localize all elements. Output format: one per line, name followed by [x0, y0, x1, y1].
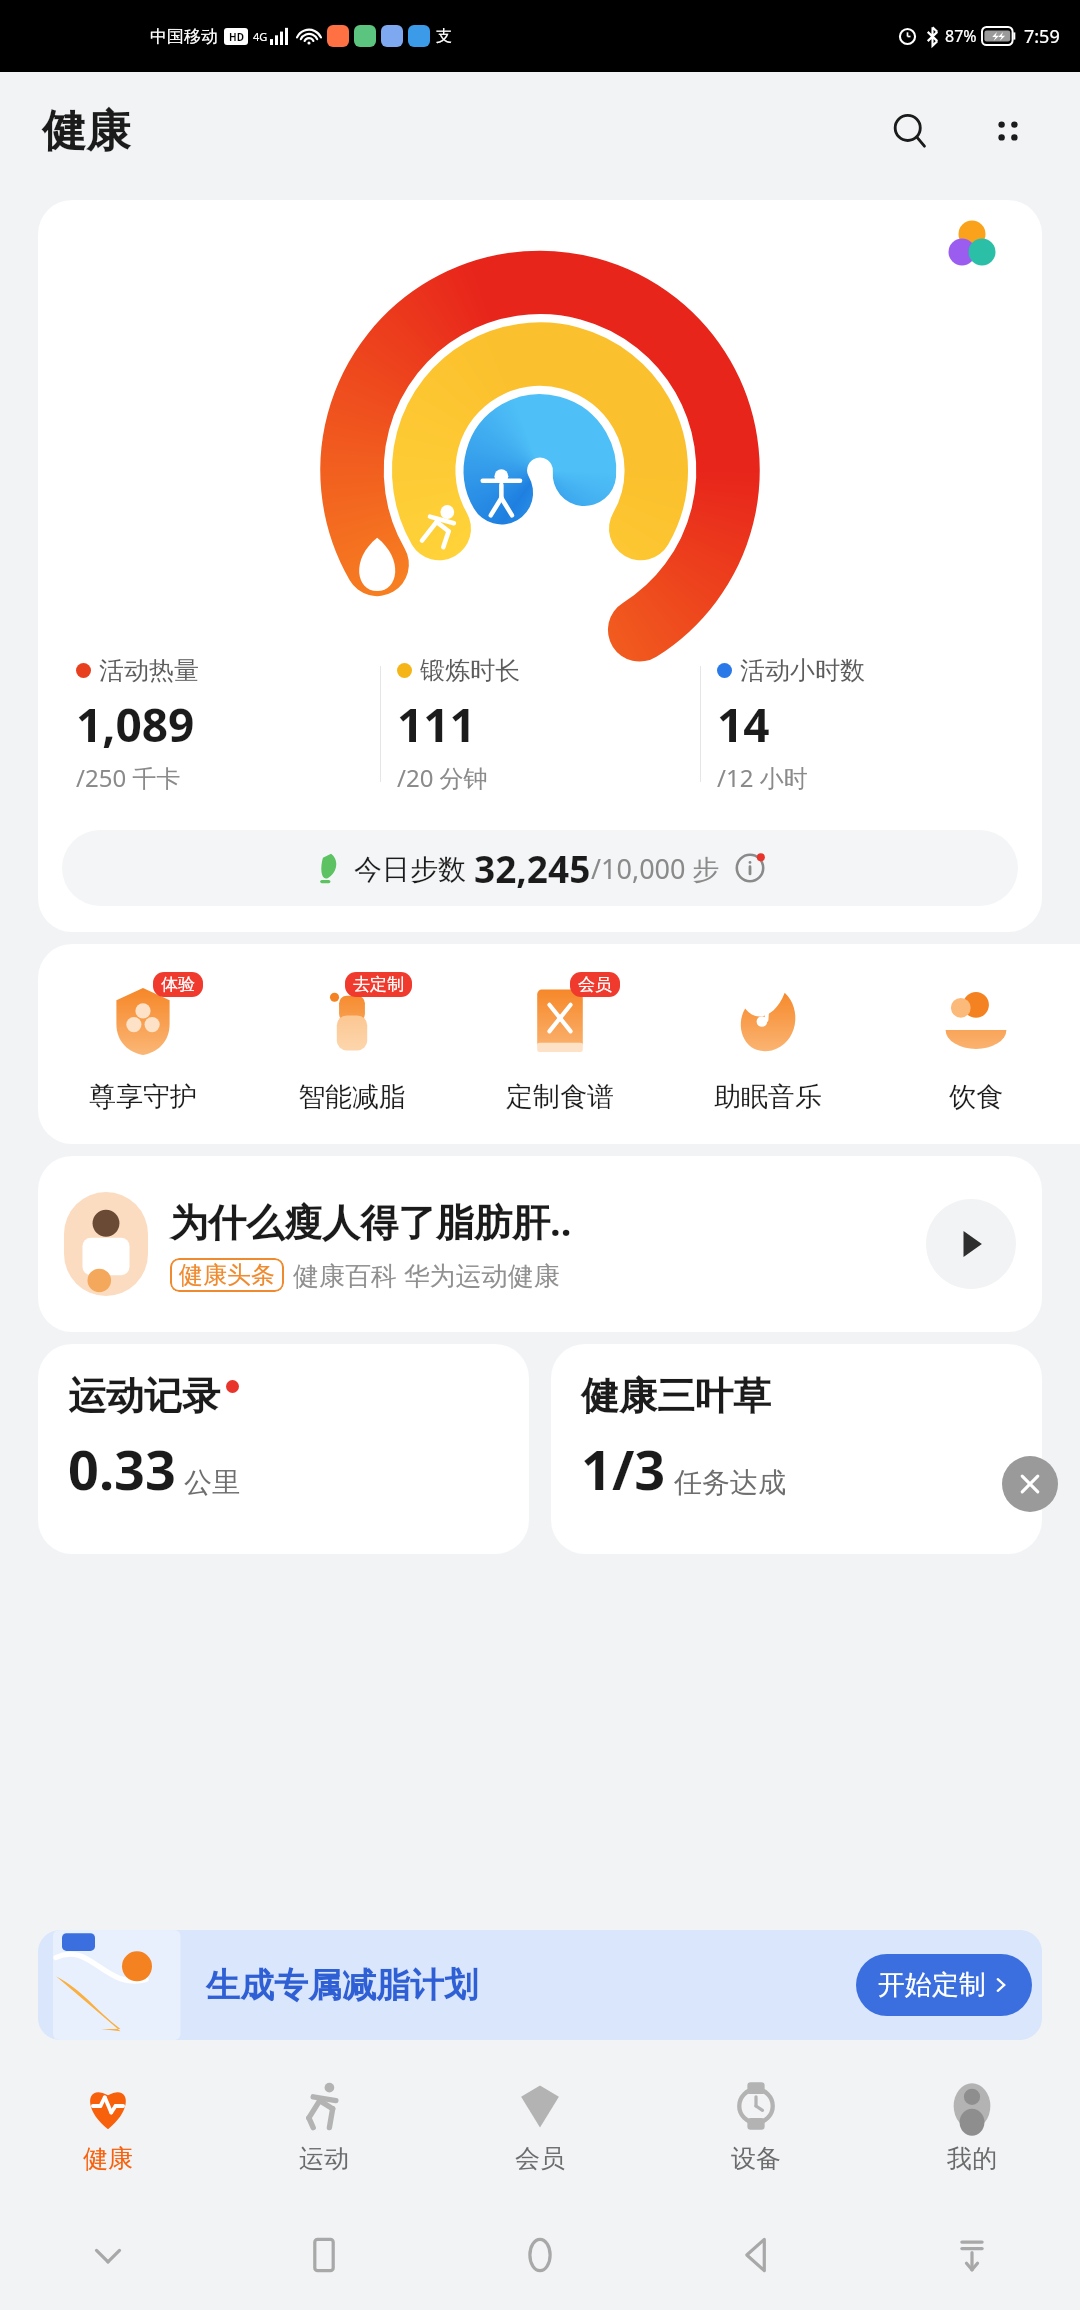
button[interactable]: 生成专属减脂计划 [38, 1930, 1042, 2040]
staticText: 1/3 [581, 1432, 666, 1506]
staticText: /250 千卡 [76, 761, 181, 794]
staticText: 锻炼时长 [420, 655, 520, 686]
staticText: 去定制 [353, 974, 404, 995]
staticText: 体验 [161, 974, 195, 995]
button[interactable]: 会员 [432, 2050, 648, 2200]
staticText: 尊享守护 [89, 1080, 197, 1114]
button[interactable]: 运动记录 [38, 1344, 529, 1554]
button[interactable]: 健康三叶草 [551, 1344, 1042, 1554]
staticText: 4G [253, 29, 268, 44]
button[interactable]: Step info [730, 848, 770, 888]
staticText: /10,000 步 [591, 850, 720, 887]
button[interactable]: 开始定制 [856, 1954, 1032, 2016]
staticText: 设备 [731, 2143, 781, 2174]
staticText: 中国移动 [150, 26, 218, 47]
staticText: 健康 [83, 2143, 133, 2174]
staticText: 助眠音乐 [714, 1080, 822, 1114]
staticText: 我的 [947, 2143, 997, 2174]
staticText: 支 [436, 26, 452, 46]
staticText: 任务达成 [674, 1465, 786, 1500]
staticText: 运动记录 [68, 1372, 220, 1420]
button[interactable]: 饮食 [872, 974, 1080, 1114]
staticText: HD [229, 30, 244, 44]
button[interactable]: 今日步数 [62, 830, 1018, 906]
staticText: 32,245 [474, 843, 591, 893]
staticText: 生成专属减脂计划 [206, 1964, 478, 2007]
button[interactable]: 我的 [864, 2050, 1080, 2200]
button[interactable]: 为什么瘦人得了脂肪肝.. [38, 1156, 1042, 1332]
button[interactable]: 活动热量 [60, 640, 380, 808]
button[interactable]: Search [874, 95, 946, 167]
staticText: 定制食谱 [506, 1080, 614, 1114]
button[interactable]: 去定制 [247, 974, 456, 1114]
staticText: 0.33 [68, 1432, 176, 1506]
staticText: 7:59 [1024, 24, 1060, 49]
staticText: 活动小时数 [740, 655, 865, 686]
staticText: 活动热量 [99, 655, 199, 686]
button[interactable]: System key 4 [864, 2200, 1080, 2310]
staticText: 健康三叶草 [581, 1372, 771, 1420]
button[interactable]: System key 0 [0, 2200, 216, 2310]
button[interactable]: 助眠音乐 [664, 974, 872, 1114]
staticText: 为什么瘦人得了脂肪肝.. [170, 1195, 572, 1247]
staticText: 14 [717, 693, 770, 756]
staticText: 开始定制 [878, 1968, 986, 2002]
button[interactable]: System key 2 [432, 2200, 648, 2310]
button[interactable]: 锻炼时长 [381, 640, 700, 808]
staticText: 公里 [184, 1465, 240, 1500]
button[interactable]: System key 1 [216, 2200, 432, 2310]
staticText: 87% [945, 25, 977, 47]
staticText: 1,089 [76, 693, 195, 756]
staticText: 健康头条 [179, 1260, 275, 1290]
button[interactable]: Health widgets [902, 202, 1042, 284]
staticText: 运动 [299, 2143, 349, 2174]
staticText: /20 分钟 [397, 761, 488, 794]
button[interactable]: Play [926, 1199, 1016, 1289]
button[interactable]: 会员 [456, 974, 664, 1114]
button[interactable]: 活动热量 [38, 200, 1042, 932]
button[interactable]: More options [972, 95, 1044, 167]
button[interactable]: System key 3 [648, 2200, 864, 2310]
staticText: 饮食 [949, 1080, 1003, 1114]
staticText: 健康 [42, 104, 130, 159]
staticText: 健康百科 华为运动健康 [293, 1257, 560, 1293]
button[interactable]: 活动小时数 [701, 640, 1020, 808]
button[interactable]: 运动 [216, 2050, 432, 2200]
staticText: /12 小时 [717, 761, 808, 794]
staticText: 会员 [515, 2143, 565, 2174]
button[interactable]: 健康 [0, 2050, 216, 2200]
staticText: 今日步数 [354, 849, 474, 887]
button[interactable]: 体验 [38, 974, 247, 1114]
staticText: 智能减脂 [298, 1080, 406, 1114]
staticText: 会员 [578, 974, 612, 995]
staticText: 111 [397, 693, 476, 756]
button[interactable]: 设备 [648, 2050, 864, 2200]
button[interactable]: Close [1002, 1456, 1058, 1512]
